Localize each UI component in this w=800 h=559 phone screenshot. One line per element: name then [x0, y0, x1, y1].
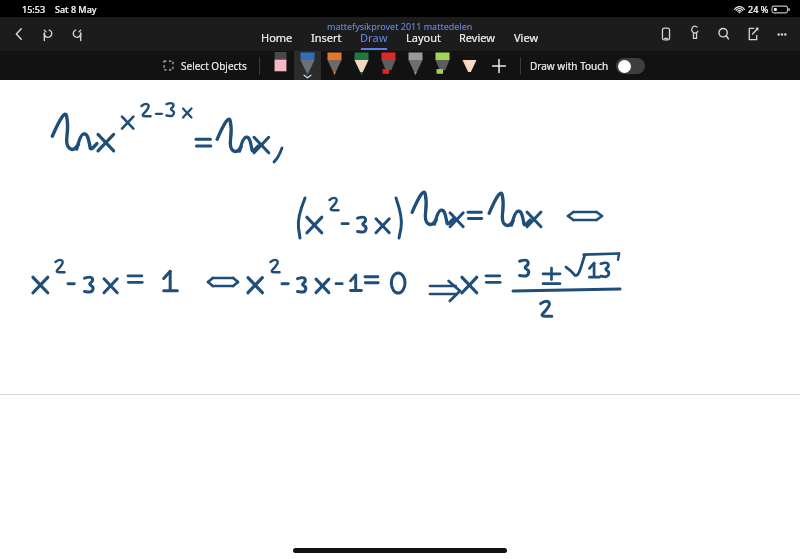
button[interactable]: Pen — [429, 51, 456, 80]
button[interactable]: Pen — [456, 51, 483, 80]
button[interactable]: Draw with Touch — [530, 51, 645, 80]
staticText: Sat 8 May — [55, 3, 97, 15]
button[interactable]: Ideas — [680, 19, 709, 49]
button[interactable]: Pen — [375, 51, 402, 80]
staticText: 15:53 — [22, 3, 46, 15]
staticText: Draw — [360, 30, 388, 45]
button[interactable]: Insert — [302, 30, 351, 50]
button[interactable]: Pen — [267, 51, 294, 80]
button[interactable]: Undo — [33, 19, 62, 49]
staticText: Draw with Touch — [530, 59, 609, 73]
button[interactable]: Pen — [348, 51, 375, 80]
staticText: View — [514, 30, 539, 45]
staticText: Insert — [311, 30, 342, 45]
staticText: Review — [459, 30, 495, 45]
button[interactable]: Review — [450, 30, 504, 50]
staticText: Layout — [406, 30, 441, 45]
button[interactable]: Share — [738, 19, 767, 49]
button[interactable]: Redo — [62, 19, 91, 49]
button[interactable]: Pen — [402, 51, 429, 80]
button[interactable]: Phone layout — [651, 19, 680, 49]
button[interactable]: Search — [709, 19, 738, 49]
staticText: mattefysikprovet 2011 mattedelen — [327, 20, 473, 32]
button[interactable]: Pen — [294, 51, 321, 80]
button[interactable]: Draw — [351, 30, 397, 50]
button[interactable]: More options — [767, 19, 796, 49]
button[interactable]: Back — [4, 19, 33, 49]
staticText: Select Objects — [181, 59, 247, 73]
button[interactable]: Select Objects — [158, 51, 251, 80]
button[interactable]: Layout — [397, 30, 450, 50]
button[interactable]: Add pen — [486, 53, 512, 79]
button[interactable]: View — [504, 30, 548, 50]
staticText: Home — [261, 30, 293, 45]
button[interactable]: Home — [252, 30, 302, 50]
button[interactable]: Pen — [321, 51, 348, 80]
staticText: 24 % — [748, 3, 769, 15]
